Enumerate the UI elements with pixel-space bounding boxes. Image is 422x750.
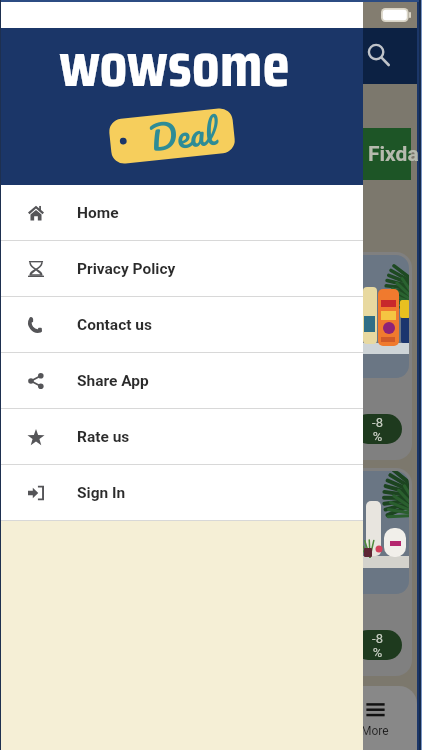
staticText: Sign In: [77, 484, 126, 502]
staticText: Privacy Policy: [77, 260, 176, 278]
staticText: -8 %: [372, 415, 383, 444]
button[interactable]: More: [340, 686, 410, 750]
button[interactable]: -8 %: [353, 630, 402, 660]
button[interactable]: Sign In: [1, 465, 363, 520]
staticText: wowsome: [59, 13, 290, 87]
staticText: Home: [77, 204, 119, 222]
button[interactable]: -8 %: [353, 414, 402, 444]
staticText: Fixdarma Gel: [368, 142, 422, 167]
button[interactable]: Fixdarma Gel: [0, 128, 411, 180]
staticText: Rate us: [77, 428, 130, 446]
staticText: Contact us: [77, 316, 152, 334]
staticText: -8 %: [372, 631, 383, 660]
staticText: More: [361, 724, 389, 738]
button[interactable]: Contact us: [1, 297, 363, 352]
button[interactable]: Search: [365, 41, 395, 71]
button[interactable]: Share App: [1, 353, 363, 408]
staticText: Share App: [77, 372, 149, 390]
staticText: Deal: [146, 102, 221, 166]
button[interactable]: Privacy Policy: [1, 241, 363, 296]
button[interactable]: -8 %: [0, 468, 412, 676]
button[interactable]: -8 %: [0, 252, 412, 460]
button[interactable]: Rate us: [1, 409, 363, 464]
button[interactable]: Home: [1, 185, 363, 240]
